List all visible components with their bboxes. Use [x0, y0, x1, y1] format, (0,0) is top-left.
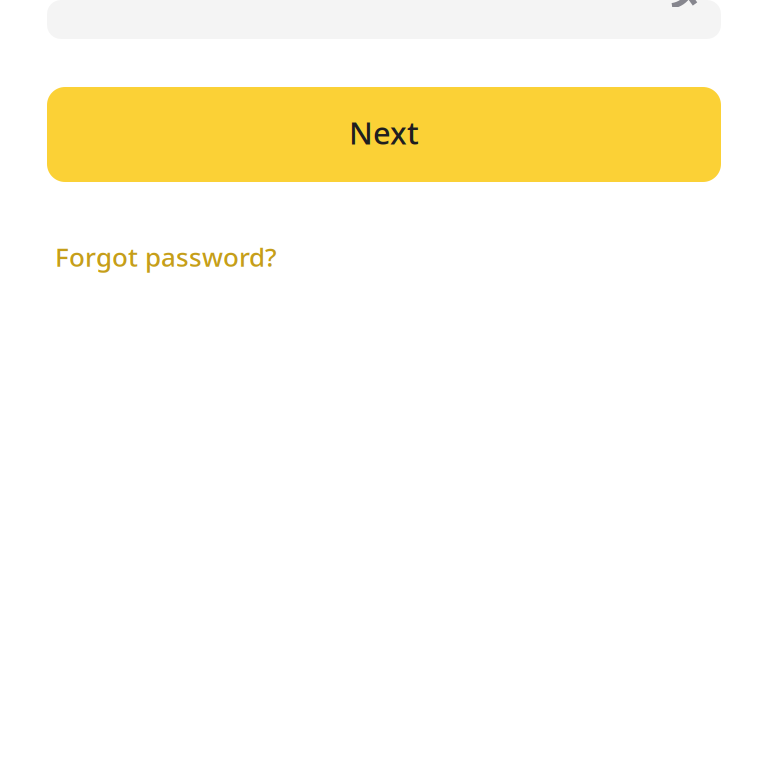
button[interactable]: Forgot password?: [47, 239, 277, 274]
staticText: Next: [349, 112, 419, 153]
button[interactable]: Show password: [666, 0, 721, 7]
staticText: Forgot password?: [55, 239, 277, 274]
button[interactable]: Next: [47, 87, 721, 182]
